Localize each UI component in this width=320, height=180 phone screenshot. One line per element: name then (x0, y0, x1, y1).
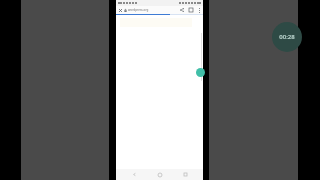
button[interactable]: Recent apps (178, 169, 192, 180)
button[interactable]: wordpress.org (124, 6, 177, 14)
staticText: wordpress.org (128, 8, 149, 12)
button[interactable]: Tabs (186, 6, 195, 14)
button[interactable]: Home (153, 169, 167, 180)
button[interactable]: More options (195, 6, 203, 14)
button[interactable]: Back (127, 169, 141, 180)
button[interactable]: Recording timer (272, 22, 302, 52)
button[interactable]: Close (116, 6, 124, 14)
staticText: 00:28 (279, 33, 295, 41)
button[interactable]: Share (177, 6, 186, 14)
